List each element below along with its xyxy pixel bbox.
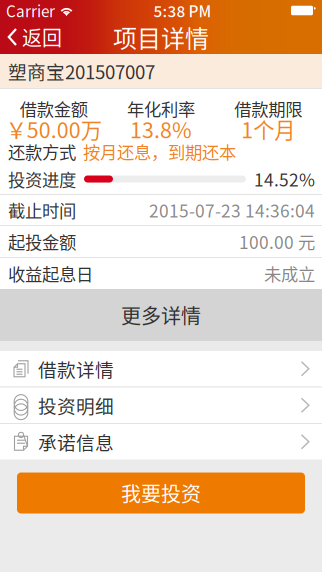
- staticText: 塑商宝201507007: [8, 57, 155, 84]
- staticText: 年化利率: [127, 96, 195, 121]
- staticText: 13.8%: [130, 114, 192, 144]
- staticText: 借款期限: [234, 96, 302, 121]
- staticText: 起投金额: [8, 229, 76, 254]
- button[interactable]: 返回: [0, 20, 70, 53]
- staticText: 借款详情: [38, 355, 114, 382]
- button[interactable]: 借款详情: [0, 351, 322, 386]
- staticText: Carrier: [6, 0, 55, 22]
- staticText: 我要投资: [121, 478, 201, 507]
- staticText: 1个月: [241, 114, 295, 144]
- staticText: ￥50.00万: [6, 114, 102, 144]
- staticText: 按月还息，到期还本: [83, 139, 236, 164]
- staticText: 5:38 PM: [153, 0, 211, 22]
- staticText: 更多详情: [121, 300, 201, 329]
- staticText: 投资明细: [38, 392, 114, 419]
- staticText: 收益起息日: [8, 261, 93, 286]
- staticText: 2015-07-23 14:36:04: [149, 197, 315, 223]
- button[interactable]: 投资明细: [0, 387, 322, 423]
- staticText: 承诺信息: [38, 428, 114, 455]
- staticText: 返回: [22, 22, 62, 51]
- staticText: 未成立: [264, 261, 315, 286]
- staticText: 14.52%: [254, 166, 315, 192]
- staticText: 100.00 元: [239, 229, 315, 254]
- staticText: 还款方式: [8, 139, 76, 164]
- staticText: 截止时间: [8, 197, 76, 223]
- staticText: 投资进度: [8, 166, 76, 192]
- button[interactable]: 我要投资: [17, 472, 305, 513]
- staticText: 项目详情: [113, 20, 209, 54]
- button[interactable]: 承诺信息: [0, 424, 322, 459]
- staticText: 借款金额: [20, 96, 88, 121]
